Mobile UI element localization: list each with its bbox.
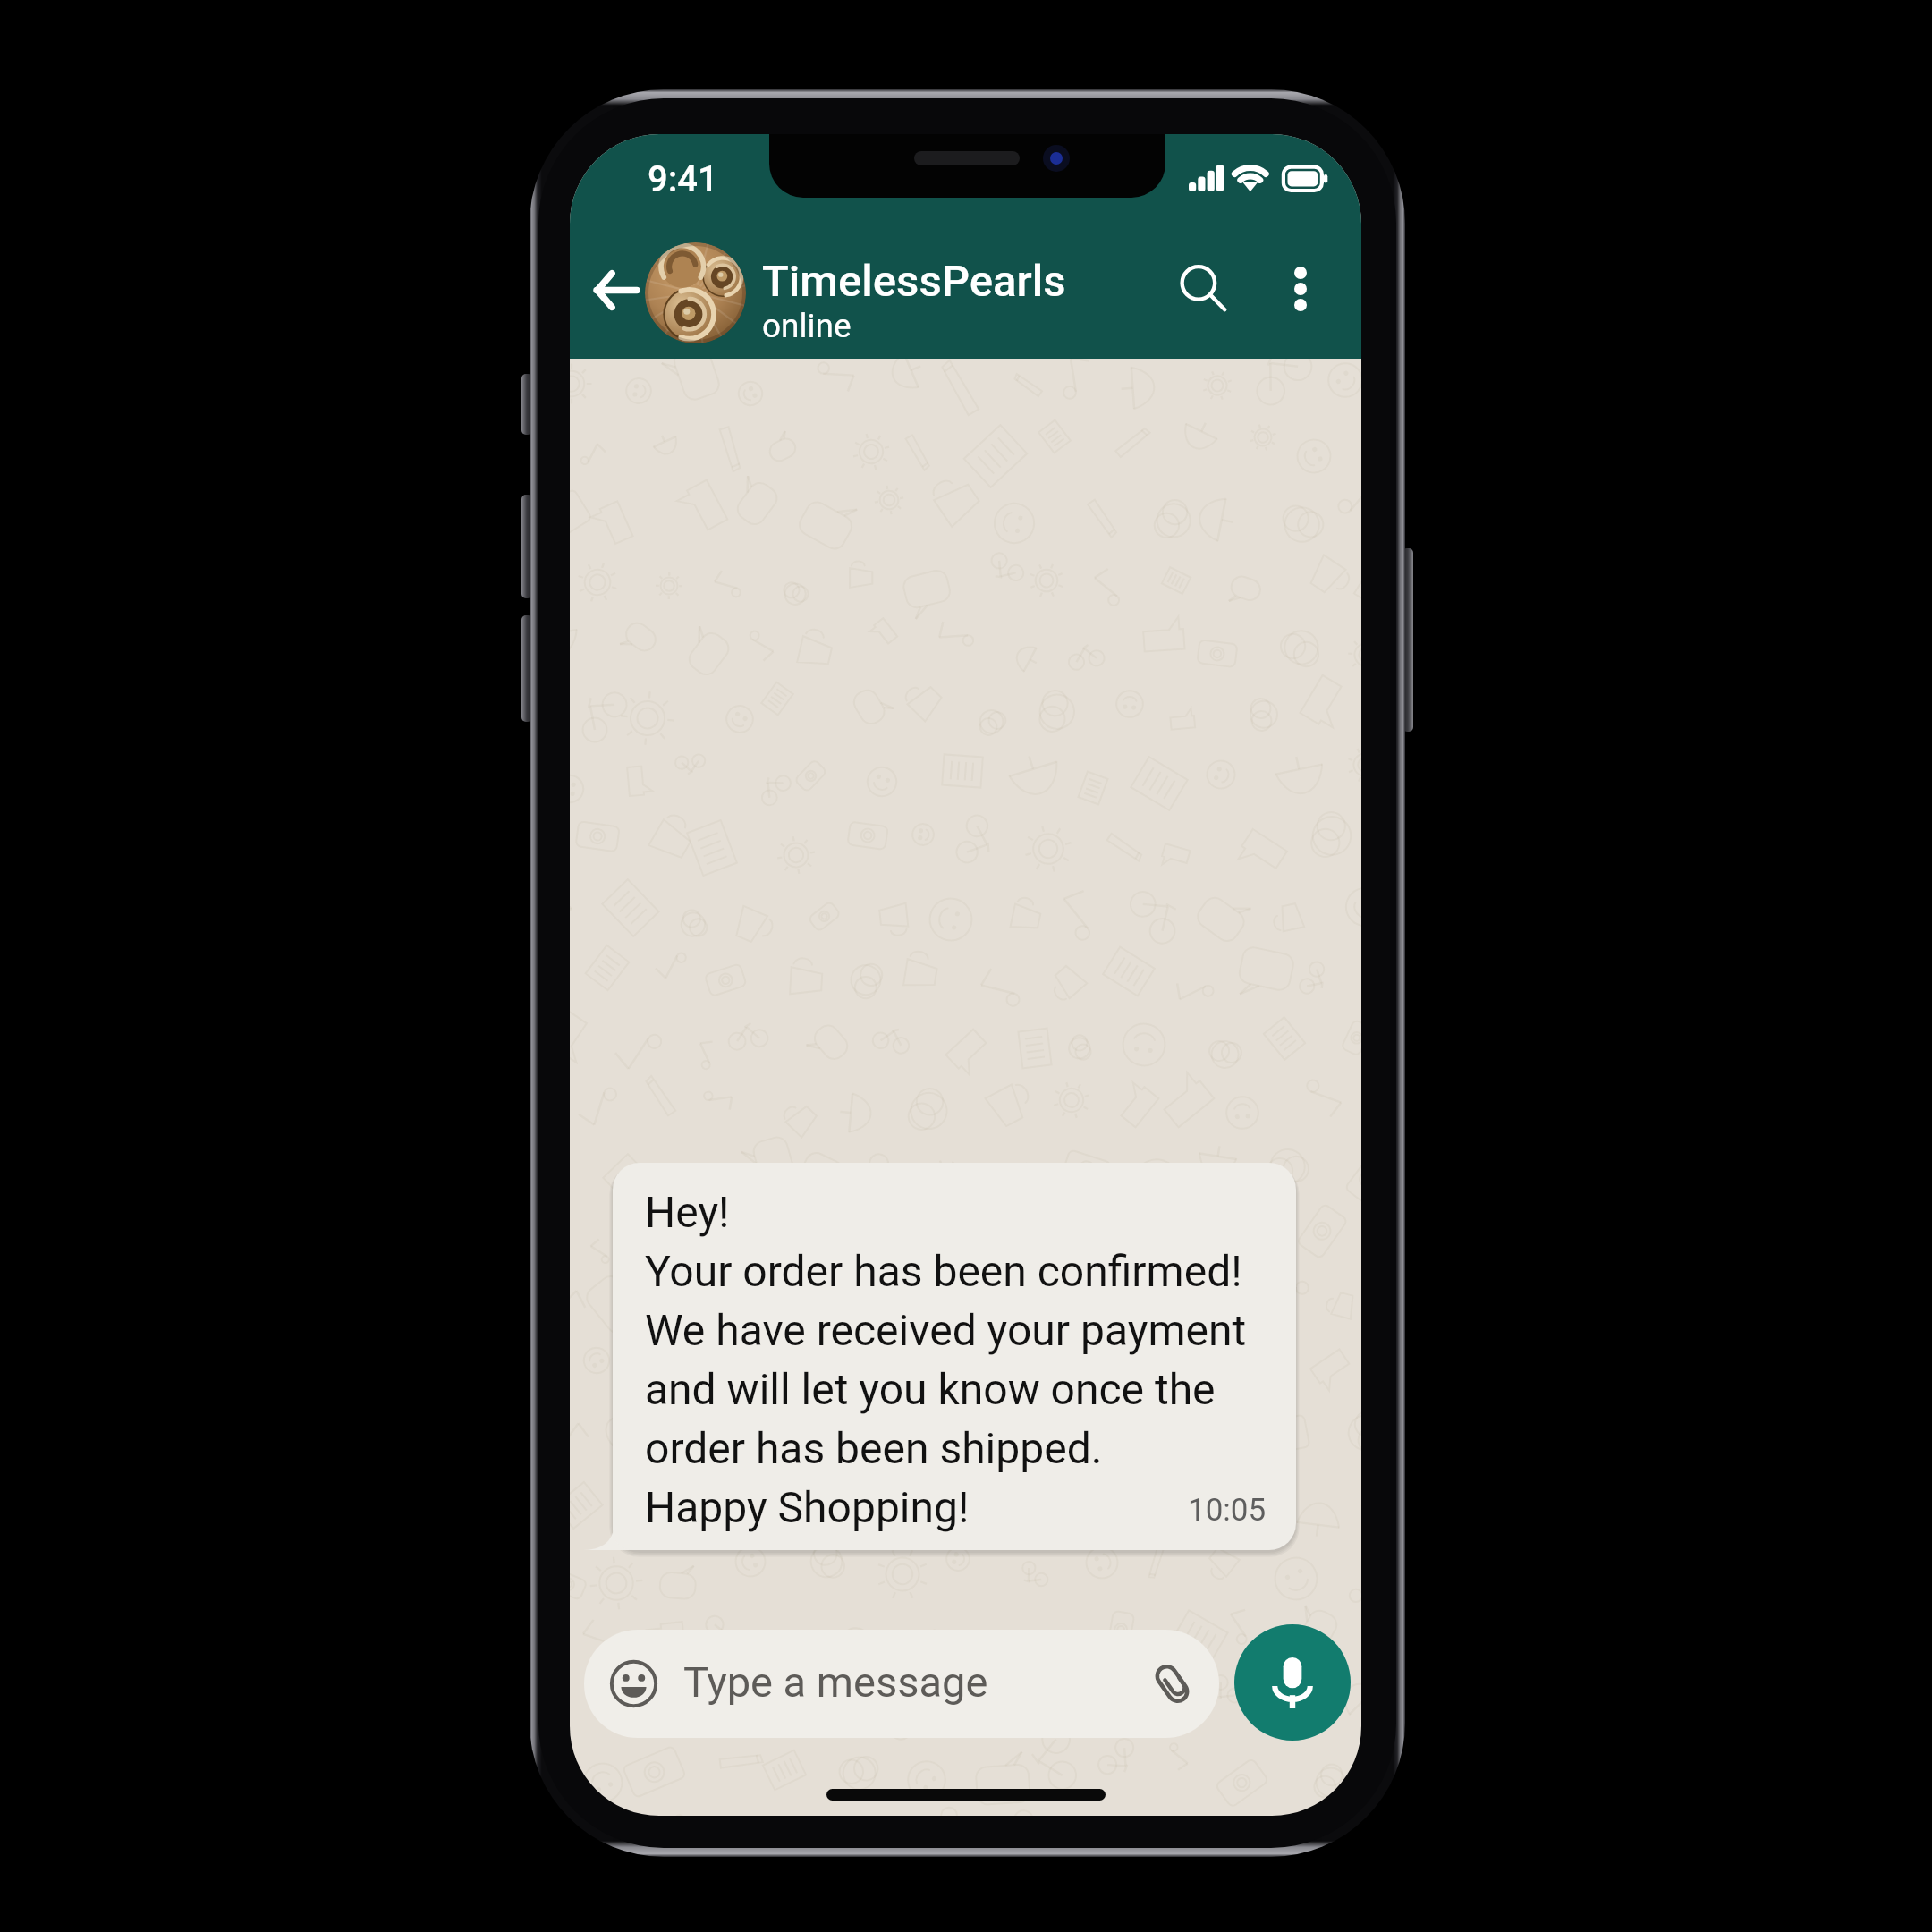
staticText: Type a message [683, 1658, 988, 1707]
button[interactable]: More options [1269, 258, 1332, 320]
button[interactable]: Emoji [610, 1660, 657, 1707]
button[interactable]: Profile photo [645, 242, 746, 343]
staticText: online [762, 308, 852, 345]
button[interactable]: Record voice message [1234, 1624, 1351, 1741]
staticText: TimelessPearls [762, 256, 1066, 307]
button[interactable]: Search [1164, 249, 1245, 330]
button[interactable]: Emoji [584, 1630, 1219, 1738]
staticText: Hey! Your order has been confirmed! We h… [645, 1181, 1247, 1535]
button[interactable]: Hey! Your order has been confirmed! We h… [613, 1163, 1296, 1550]
button[interactable]: Attach [1148, 1660, 1196, 1707]
staticText: 10:05 [1188, 1492, 1267, 1528]
button[interactable]: Back [574, 249, 657, 331]
staticText: 9:41 [648, 160, 718, 199]
